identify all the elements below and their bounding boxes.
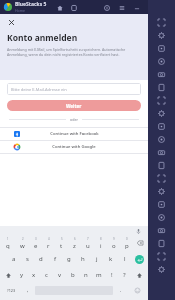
button[interactable]: c — [40, 267, 53, 283]
button[interactable]: j — [90, 251, 104, 267]
staticText: x — [32, 271, 36, 279]
staticText: g — [67, 255, 71, 263]
button[interactable]: s — [20, 251, 34, 267]
button[interactable]: Minimize — [132, 3, 141, 12]
button[interactable]: Voice input — [135, 228, 141, 234]
button[interactable]: 5 — [55, 235, 68, 251]
button[interactable]: Menu — [117, 3, 126, 12]
button[interactable]: Home — [55, 3, 64, 12]
button[interactable]: d — [34, 251, 48, 267]
staticText: Anmeldung mit E-Mail, um Spielfortschrit… — [7, 47, 141, 57]
button[interactable]: Weiter — [7, 100, 141, 111]
staticText: b — [71, 271, 75, 279]
staticText: Home — [15, 8, 25, 13]
staticText: 0 — [126, 237, 128, 241]
staticText: r — [47, 242, 50, 250]
button[interactable]: Media — [148, 120, 175, 133]
button[interactable]: g — [62, 251, 76, 267]
button[interactable]: Location — [148, 94, 175, 107]
button[interactable]: Comma — [21, 283, 34, 298]
button[interactable]: Keymapping — [148, 42, 175, 55]
button[interactable]: Backspace — [134, 236, 146, 250]
staticText: , — [27, 287, 29, 294]
button[interactable]: h — [76, 251, 90, 267]
button[interactable]: Shake — [148, 107, 175, 120]
button[interactable]: 4 — [42, 235, 55, 251]
button[interactable]: n — [79, 267, 92, 283]
staticText: Continue with Facebook — [50, 131, 99, 137]
button[interactable]: ! — [105, 267, 118, 283]
staticText: Konto anmelden — [7, 32, 78, 44]
staticText: h — [81, 255, 85, 263]
button[interactable]: 0 — [120, 235, 133, 251]
button[interactable]: 3 — [29, 235, 42, 251]
button[interactable]: Bitte deine E-Mail-Adresse ein — [7, 83, 141, 95]
staticText: s — [26, 255, 29, 263]
staticText: BlueStacks 5 — [15, 1, 47, 8]
button[interactable]: Gallery — [148, 133, 175, 146]
staticText: ?123 — [7, 288, 16, 293]
button[interactable]: Trash — [148, 172, 175, 185]
button[interactable]: 2 — [15, 235, 29, 251]
button[interactable]: ? — [118, 267, 131, 283]
staticText: f — [54, 255, 57, 263]
button[interactable]: Volume — [148, 55, 175, 68]
button[interactable]: Record — [148, 81, 175, 94]
button[interactable]: 8 — [94, 235, 107, 251]
button[interactable]: Multi-instance — [148, 211, 175, 224]
button[interactable]: Help — [102, 3, 111, 12]
button[interactable]: Chat — [148, 198, 175, 211]
staticText: u — [86, 242, 90, 250]
staticText: j — [96, 255, 98, 263]
button[interactable]: 1 — [1, 235, 15, 251]
button[interactable]: ?123 — [1, 283, 21, 298]
button[interactable]: 6 — [68, 235, 81, 251]
staticText: 7 — [87, 237, 89, 241]
button[interactable]: Back — [148, 237, 175, 250]
button[interactable]: 7 — [81, 235, 94, 251]
button[interactable]: Camera — [148, 185, 175, 198]
staticText: m — [96, 271, 102, 279]
button[interactable]: Fullscreen — [148, 16, 175, 29]
button[interactable]: Shift — [131, 267, 147, 283]
button[interactable]: k — [104, 251, 118, 267]
staticText: p — [125, 242, 129, 250]
button[interactable]: 9 — [107, 235, 120, 251]
button[interactable]: Maximize — [147, 3, 156, 12]
button[interactable]: v — [53, 267, 66, 283]
button[interactable]: m — [92, 267, 105, 283]
staticText: k — [109, 255, 113, 263]
staticText: d — [39, 255, 43, 263]
button[interactable]: Enter — [134, 253, 145, 265]
button[interactable]: Emoji — [127, 283, 147, 298]
button[interactable]: b — [66, 267, 79, 283]
button[interactable]: Screenshot — [148, 68, 175, 81]
button[interactable]: Apps — [69, 3, 78, 12]
staticText: v — [58, 271, 62, 279]
staticText: n — [84, 271, 88, 279]
staticText: w — [20, 242, 25, 250]
staticText: 1 — [7, 237, 9, 241]
button[interactable]: l — [118, 251, 132, 267]
staticText: . — [120, 287, 122, 294]
button[interactable]: Home — [148, 250, 175, 263]
button[interactable]: Continue with Facebook — [0, 128, 148, 140]
staticText: Bitte deine E-Mail-Adresse ein — [11, 87, 67, 92]
button[interactable]: Macro — [148, 146, 175, 159]
button[interactable]: Rotate — [148, 159, 175, 172]
button[interactable]: Period — [114, 283, 127, 298]
button[interactable]: Recents — [148, 263, 175, 276]
staticText: Continue with Google — [52, 144, 96, 150]
button[interactable]: f — [48, 251, 62, 267]
staticText: ? — [123, 271, 126, 279]
button[interactable]: Continue with Google — [0, 141, 148, 153]
button[interactable]: Shift — [1, 267, 16, 283]
button[interactable]: a — [7, 251, 20, 267]
button[interactable]: y — [16, 267, 28, 283]
button[interactable]: x — [28, 267, 40, 283]
button[interactable]: Close — [7, 18, 16, 27]
button[interactable]: Settings — [148, 29, 175, 42]
button[interactable]: Eco mode — [148, 224, 175, 237]
